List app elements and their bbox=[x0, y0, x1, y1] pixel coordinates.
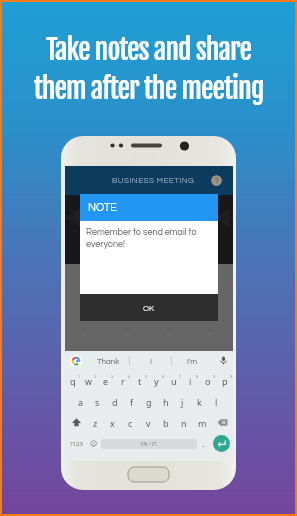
button[interactable]: Emoji bbox=[87, 440, 101, 448]
staticText: t bbox=[138, 375, 142, 387]
staticText: 6 bbox=[162, 374, 165, 379]
staticText: OK bbox=[143, 304, 155, 312]
staticText: 8 bbox=[196, 374, 199, 379]
staticText: f bbox=[130, 396, 134, 408]
staticText: NOTE bbox=[88, 202, 117, 213]
staticText: l bbox=[215, 396, 218, 408]
staticText: Take notes and share them after the meet… bbox=[2, 32, 295, 105]
staticText: ?123 bbox=[70, 440, 83, 448]
staticText: x bbox=[110, 417, 115, 429]
staticText: 3 bbox=[111, 374, 114, 379]
button[interactable]: s bbox=[89, 396, 106, 408]
staticText: ☺ bbox=[90, 440, 98, 448]
button[interactable]: I bbox=[130, 357, 171, 365]
staticText: p bbox=[222, 375, 228, 387]
staticText: 1 bbox=[78, 374, 81, 379]
staticText: k bbox=[197, 396, 202, 408]
button[interactable]: . bbox=[197, 438, 209, 449]
button[interactable]: e bbox=[97, 375, 114, 387]
button[interactable]: d bbox=[106, 396, 123, 408]
button[interactable]: Google bbox=[65, 355, 87, 367]
button[interactable]: o bbox=[199, 375, 216, 387]
staticText: y bbox=[154, 375, 159, 387]
button[interactable]: z bbox=[87, 417, 104, 429]
staticText: w bbox=[85, 375, 93, 387]
button[interactable]: i bbox=[182, 375, 199, 387]
staticText: o bbox=[205, 375, 211, 387]
button[interactable]: Help bbox=[211, 175, 222, 186]
staticText: 9 bbox=[213, 374, 216, 379]
staticText: 0 bbox=[230, 374, 233, 379]
button[interactable]: l bbox=[208, 396, 225, 408]
staticText: 2 bbox=[94, 374, 97, 379]
staticText: . bbox=[202, 438, 205, 449]
button[interactable]: p bbox=[216, 375, 233, 387]
button[interactable]: y bbox=[148, 375, 165, 387]
staticText: ? bbox=[215, 177, 219, 184]
staticText: e bbox=[103, 375, 109, 387]
button[interactable]: x bbox=[104, 417, 121, 429]
button[interactable]: ?123 bbox=[65, 440, 87, 448]
staticText: v bbox=[146, 417, 151, 429]
staticText: Remember to send email to everyone! bbox=[86, 228, 212, 249]
staticText: r bbox=[121, 375, 125, 387]
staticText: 7 bbox=[179, 374, 182, 379]
button[interactable]: q bbox=[65, 375, 81, 387]
staticText: u bbox=[171, 375, 177, 387]
button[interactable]: Backspace bbox=[211, 417, 233, 428]
button[interactable]: c bbox=[121, 417, 139, 429]
button[interactable]: v bbox=[139, 417, 157, 429]
staticText: s bbox=[95, 396, 100, 408]
button[interactable]: t bbox=[131, 375, 148, 387]
button[interactable]: f bbox=[123, 396, 140, 408]
button[interactable]: g bbox=[140, 396, 157, 408]
button[interactable]: Shift bbox=[65, 417, 87, 428]
staticText: BUSINESS MEETING bbox=[112, 176, 195, 184]
button[interactable]: j bbox=[174, 396, 191, 408]
button[interactable]: I'm bbox=[172, 357, 213, 365]
button[interactable]: a bbox=[73, 396, 89, 408]
staticText: n bbox=[181, 417, 187, 429]
staticText: i bbox=[189, 375, 192, 387]
staticText: z bbox=[93, 417, 98, 429]
button[interactable]: b bbox=[157, 417, 175, 429]
staticText: 5 bbox=[145, 374, 148, 379]
button[interactable]: OK bbox=[80, 294, 218, 321]
button[interactable]: Thank bbox=[87, 357, 129, 365]
button[interactable]: Voice input bbox=[213, 356, 233, 365]
staticText: m bbox=[198, 417, 207, 429]
staticText: h bbox=[163, 396, 169, 408]
staticText: b bbox=[163, 417, 169, 429]
staticText: g bbox=[146, 396, 152, 408]
staticText: d bbox=[112, 396, 118, 408]
staticText: j bbox=[181, 396, 184, 408]
staticText: 4 bbox=[128, 374, 131, 379]
staticText: Thank bbox=[97, 357, 120, 365]
staticText: I'm bbox=[187, 357, 198, 365]
button[interactable]: w bbox=[81, 375, 97, 387]
button[interactable]: Enter bbox=[209, 435, 233, 452]
staticText: c bbox=[128, 417, 133, 429]
staticText: EN • IT bbox=[141, 441, 157, 448]
staticText: q bbox=[70, 375, 76, 387]
button[interactable]: k bbox=[191, 396, 208, 408]
staticText: a bbox=[78, 396, 84, 408]
staticText: I bbox=[150, 357, 152, 365]
button[interactable]: n bbox=[175, 417, 193, 429]
button[interactable]: u bbox=[165, 375, 182, 387]
button[interactable]: m bbox=[193, 417, 211, 429]
button[interactable]: EN • IT bbox=[101, 439, 197, 449]
button[interactable]: h bbox=[157, 396, 174, 408]
button[interactable]: r bbox=[114, 375, 131, 387]
